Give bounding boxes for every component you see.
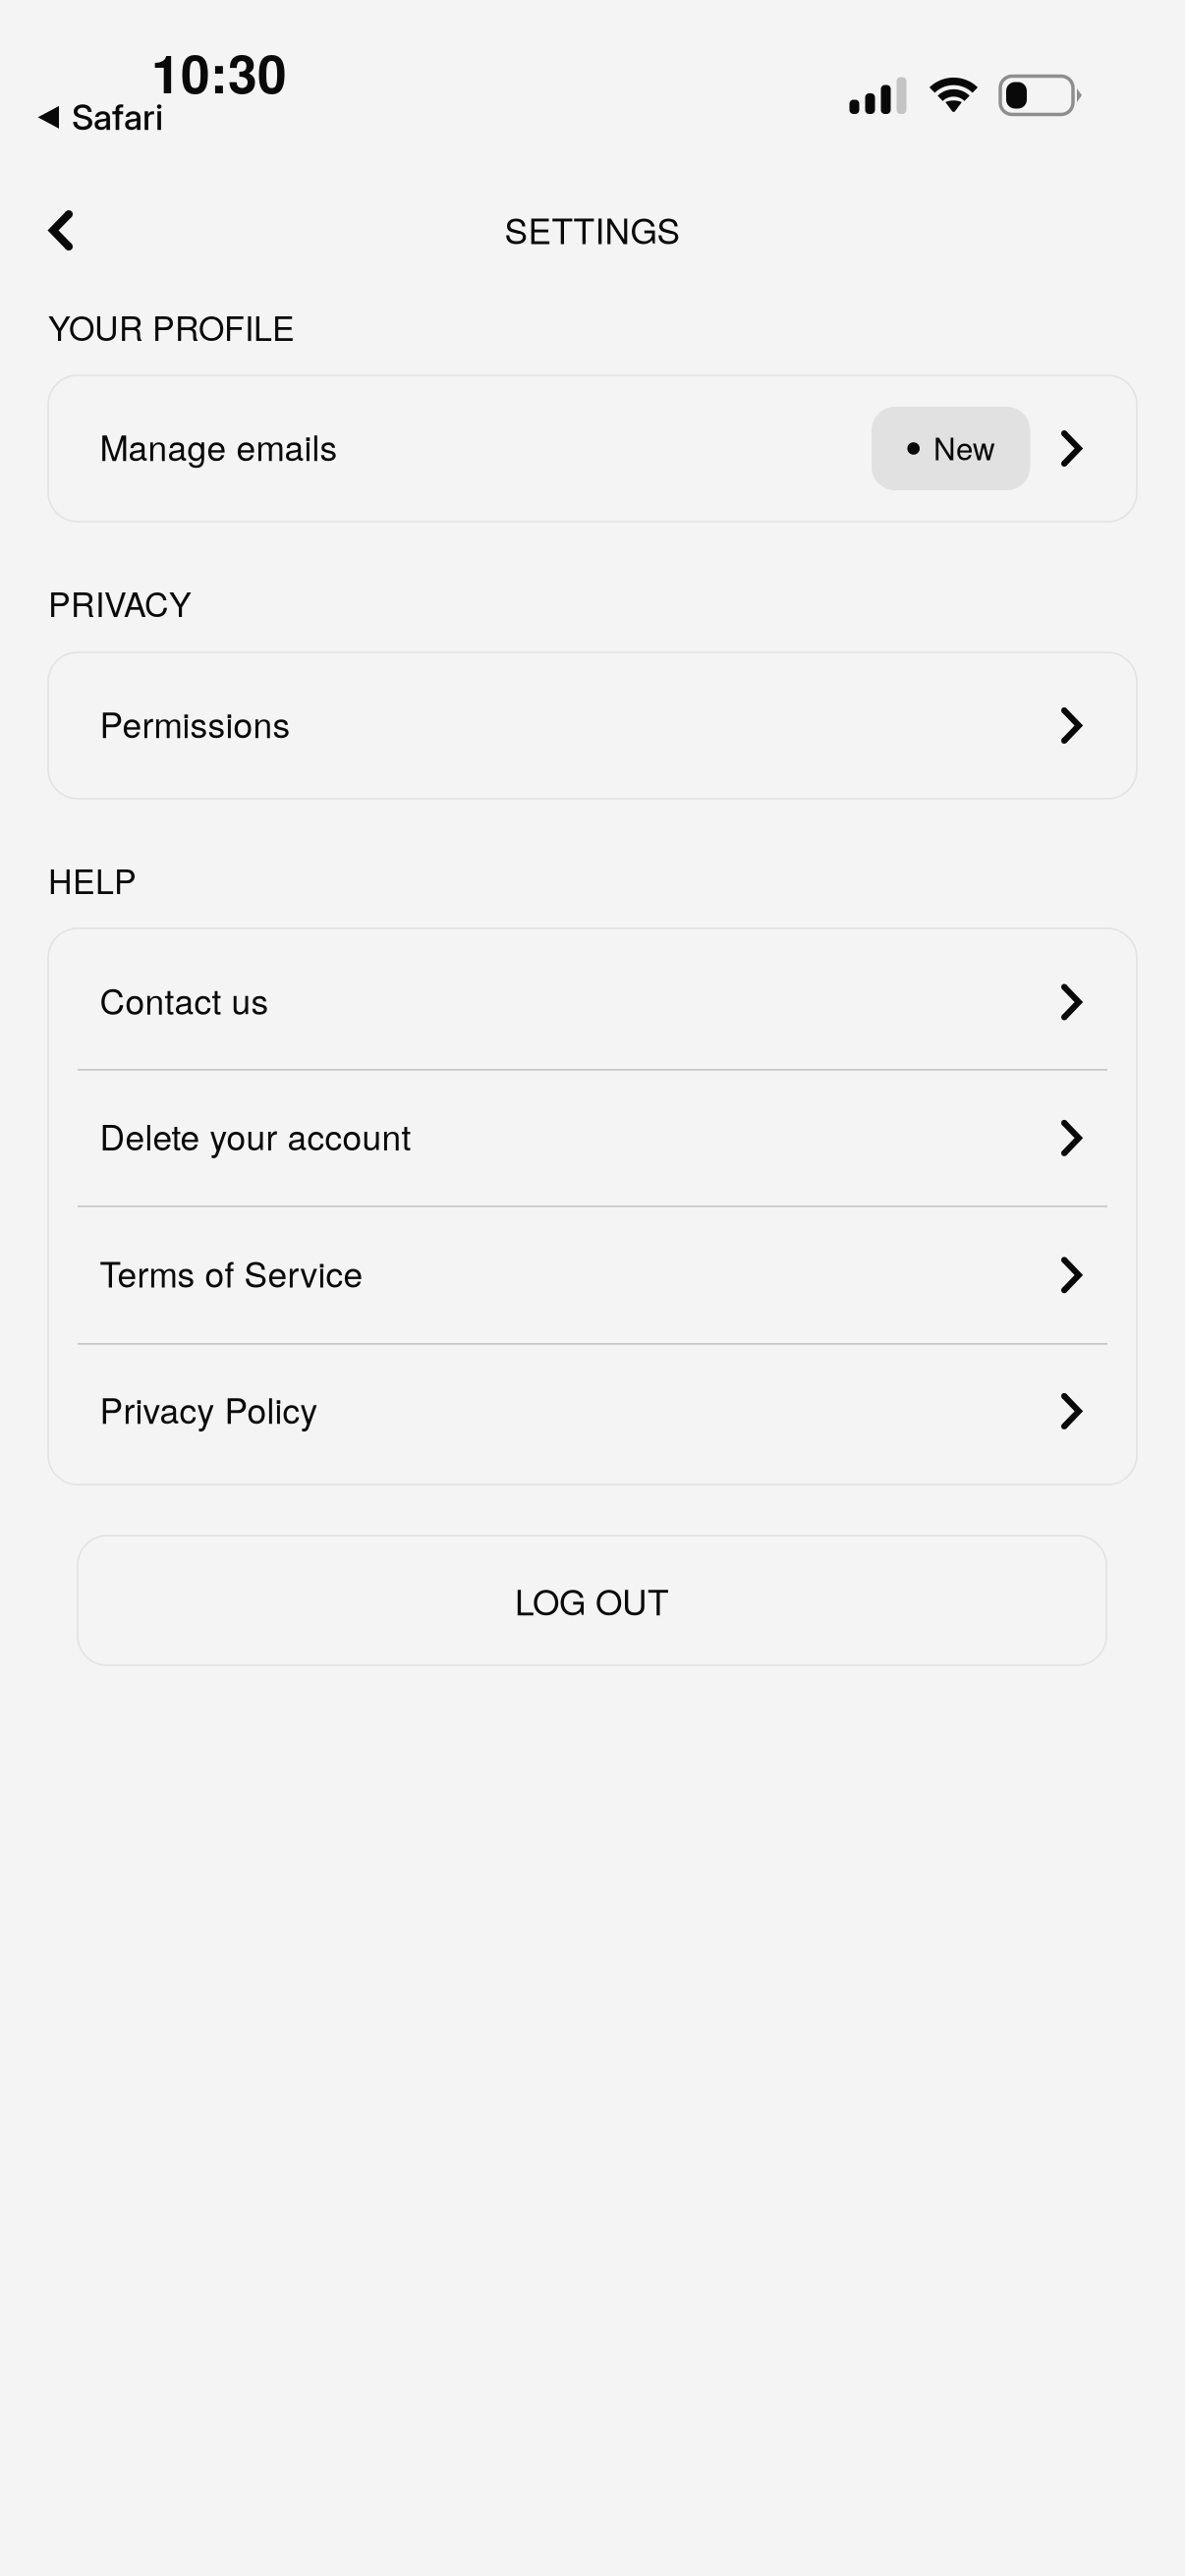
staticText: Privacy Policy	[100, 1384, 318, 1434]
button[interactable]: Back	[35, 196, 86, 264]
staticText: LOG OUT	[515, 1576, 669, 1625]
staticText: 10:30	[151, 34, 287, 109]
staticText: PRIVACY	[48, 579, 192, 627]
button[interactable]: Permissions	[48, 652, 1137, 799]
staticText: SETTINGS	[505, 204, 680, 254]
staticText: Permissions	[100, 698, 290, 748]
staticText: Terms of Service	[100, 1248, 363, 1298]
button[interactable]: LOG OUT	[78, 1536, 1106, 1665]
staticText: Delete your account	[100, 1111, 411, 1160]
button[interactable]: Manage emails	[48, 375, 1137, 522]
staticText: New	[933, 425, 995, 469]
button[interactable]: Privacy Policy	[48, 1345, 1137, 1485]
button[interactable]: Contact us	[48, 928, 1137, 1069]
staticText: Safari	[72, 96, 163, 138]
staticText: Contact us	[100, 975, 269, 1025]
button[interactable]: Safari	[38, 96, 163, 138]
staticText: YOUR PROFILE	[48, 303, 295, 350]
staticText: HELP	[48, 856, 137, 904]
button[interactable]: Delete your account	[48, 1071, 1137, 1205]
staticText: Manage emails	[100, 421, 338, 471]
button[interactable]: Terms of Service	[48, 1207, 1137, 1343]
